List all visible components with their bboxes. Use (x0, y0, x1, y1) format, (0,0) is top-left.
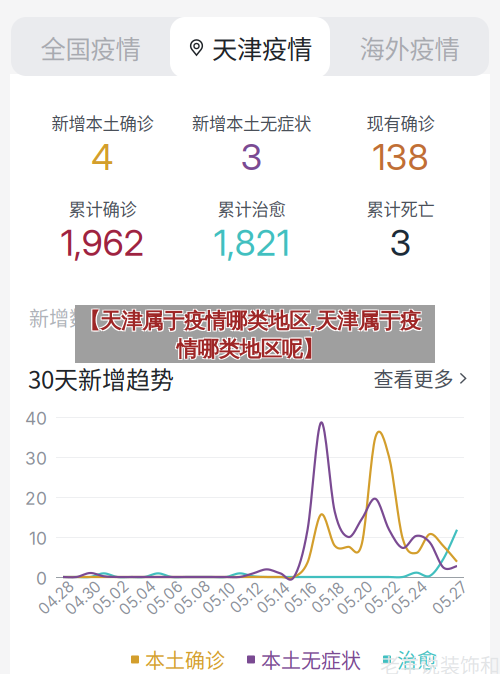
staticText: 30 (25, 448, 47, 469)
staticText: 本土确诊 (145, 645, 225, 674)
staticText: 新增本土确诊 (51, 110, 153, 135)
staticText: 情哪类地区呢】 (177, 335, 324, 362)
staticText: 04.28 (35, 589, 76, 607)
staticText: 1,821 (213, 221, 289, 264)
staticText: 05.10 (200, 589, 238, 607)
staticText: 05.08 (171, 589, 213, 607)
staticText: 05.18 (309, 589, 346, 607)
staticText: 新增数据统计图 (29, 303, 169, 332)
staticText: 05.02 (89, 589, 131, 607)
staticText: 海外疫情 (359, 29, 459, 66)
staticText: 情哪类地区呢】 (176, 336, 323, 363)
staticText: 3 (389, 221, 411, 264)
staticText: 老羊说装饰和人文 (380, 650, 500, 674)
staticText: 情哪类地区呢】 (177, 336, 324, 363)
staticText: 3 (240, 135, 262, 179)
staticText: 40 (25, 408, 47, 429)
staticText: 4 (91, 135, 114, 179)
staticText: 累计确诊 (68, 196, 136, 221)
staticText: 05.16 (282, 589, 320, 607)
staticText: 1,962 (60, 221, 144, 264)
staticText: 【天津属于疫情哪类地区,天津属于疫 (80, 305, 422, 334)
staticText: 天津疫情 (212, 29, 312, 66)
staticText: 05.24 (388, 589, 430, 607)
staticText: 10 (29, 528, 47, 549)
staticText: 05.27 (429, 589, 470, 607)
staticText: 累计治愈 (217, 196, 285, 221)
staticText: 20 (25, 488, 47, 509)
staticText: 【天津属于疫情哪类地区,天津属于疫 (78, 306, 420, 335)
staticText: 05.20 (334, 589, 376, 607)
staticText: 现有确诊 (366, 110, 434, 135)
staticText: 情哪类地区呢】 (176, 336, 323, 362)
staticText: 本土无症状 (261, 645, 361, 674)
staticText: 05.14 (254, 589, 292, 607)
button[interactable]: 查看更多 (373, 364, 468, 393)
staticText: 新增本土无症状 (192, 110, 311, 135)
staticText: 05.12 (228, 589, 265, 607)
staticText: 138 (372, 135, 428, 179)
staticText: 05.04 (116, 589, 159, 607)
button[interactable]: 天津疫情 (170, 17, 330, 78)
staticText: 全国疫情 (40, 29, 140, 66)
staticText: 05.06 (143, 589, 186, 607)
staticText: 0 (36, 568, 47, 589)
staticText: 【天津属于疫情哪类地区,天津属于疫 (78, 305, 420, 334)
staticText: 累计死亡 (366, 196, 434, 221)
staticText: 04.30 (62, 589, 104, 607)
staticText: 05.22 (362, 589, 403, 607)
staticText: 30天新增趋势 (28, 361, 174, 396)
staticText: 查看更多 (373, 364, 453, 393)
button[interactable]: 全国疫情 (11, 18, 170, 77)
staticText: 【天津属于疫情哪类地区,天津属于疫 (80, 306, 422, 335)
button[interactable]: 海外疫情 (330, 18, 489, 77)
staticText: 【天津属于疫情哪类地区,天津属于疫 (79, 305, 421, 335)
staticText: 治愈 (397, 645, 437, 674)
staticText: 情哪类地区呢】 (176, 335, 323, 362)
